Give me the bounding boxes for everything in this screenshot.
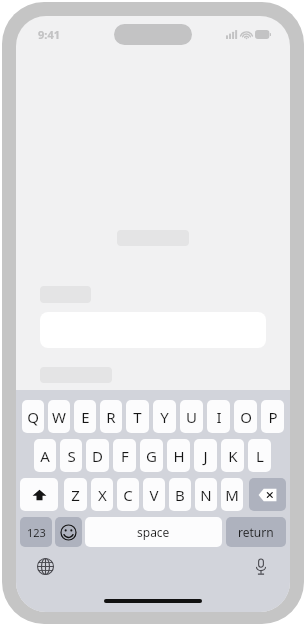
staticText: space — [137, 524, 170, 540]
staticText: M — [225, 485, 239, 505]
button[interactable]: K — [221, 439, 244, 472]
button[interactable]: space — [85, 517, 222, 547]
button[interactable]: P — [261, 400, 284, 433]
button[interactable]: V — [143, 478, 165, 511]
button[interactable]: S — [60, 439, 82, 472]
button[interactable]: Dictation — [250, 555, 272, 577]
button[interactable]: M — [221, 478, 243, 511]
button[interactable]: Y — [153, 400, 176, 433]
staticText: F — [121, 446, 129, 466]
staticText: X — [98, 485, 107, 505]
staticText: Q — [27, 407, 39, 427]
button[interactable]: Z — [64, 478, 87, 511]
button[interactable]: U — [180, 400, 203, 433]
button[interactable]: C — [117, 478, 139, 511]
staticText: E — [81, 407, 90, 427]
staticText: Y — [160, 407, 169, 427]
button[interactable]: A — [34, 439, 56, 472]
button[interactable]: Emoji — [55, 517, 82, 547]
button[interactable]: J — [194, 439, 217, 472]
staticText: O — [240, 407, 252, 427]
button[interactable]: Q — [22, 400, 44, 433]
staticText: A — [40, 446, 50, 466]
staticText: H — [173, 446, 185, 466]
staticText: Z — [71, 485, 80, 505]
button[interactable]: Change keyboard — [34, 555, 56, 577]
staticText: T — [133, 407, 142, 427]
button[interactable]: E — [74, 400, 96, 433]
button[interactable]: B — [169, 478, 191, 511]
staticText: D — [92, 446, 103, 466]
staticText: S — [67, 446, 76, 466]
staticText: I — [216, 407, 222, 427]
button[interactable]: 123 — [20, 517, 52, 547]
button[interactable]: H — [167, 439, 190, 472]
staticText: U — [186, 407, 197, 427]
staticText: R — [106, 407, 116, 427]
staticText: N — [200, 485, 212, 505]
button[interactable]: W — [48, 400, 70, 433]
button[interactable]: return — [226, 517, 286, 547]
staticText: P — [268, 407, 278, 427]
button[interactable]: F — [113, 439, 136, 472]
button[interactable]: N — [195, 478, 217, 511]
staticText: C — [123, 485, 133, 505]
staticText: B — [175, 485, 185, 505]
staticText: W — [52, 407, 66, 427]
button[interactable]: Shift — [20, 478, 58, 511]
staticText: V — [149, 485, 159, 505]
staticText: 123 — [27, 525, 46, 540]
staticText: return — [238, 524, 274, 540]
button[interactable]: L — [248, 439, 271, 472]
staticText: J — [203, 446, 208, 466]
staticText: 9:41 — [38, 27, 60, 42]
button[interactable]: I — [207, 400, 230, 433]
button[interactable]: Backspace — [249, 478, 286, 511]
staticText: K — [228, 446, 238, 466]
button[interactable] — [40, 394, 266, 430]
button[interactable]: O — [234, 400, 257, 433]
staticText: G — [146, 446, 157, 466]
staticText: L — [256, 446, 264, 466]
button[interactable]: G — [140, 439, 163, 472]
button[interactable]: T — [126, 400, 149, 433]
button[interactable]: X — [91, 478, 113, 511]
button[interactable]: R — [100, 400, 122, 433]
button[interactable]: D — [86, 439, 109, 472]
